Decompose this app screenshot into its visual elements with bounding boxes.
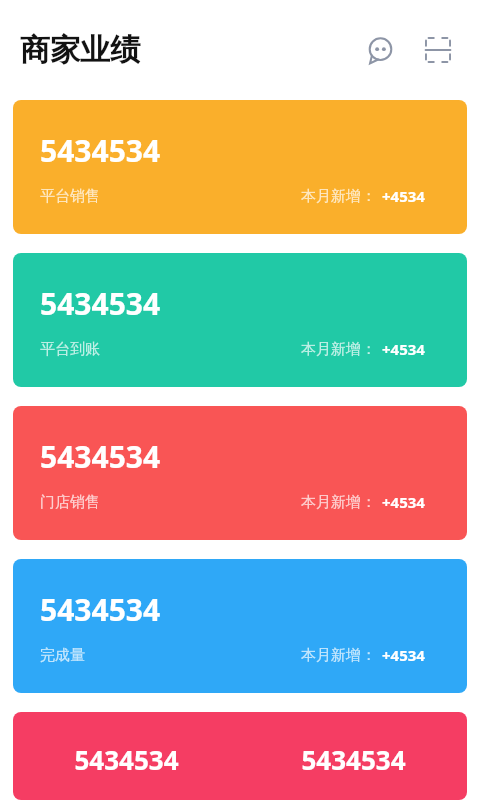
staticText: 完成量 [40, 646, 85, 665]
staticText: 5434534 [40, 436, 161, 477]
staticText: 5434534 [240, 742, 467, 777]
staticText: +4534 [382, 492, 425, 512]
button[interactable]: Scan [416, 28, 460, 72]
button[interactable]: 5434534 [13, 253, 467, 387]
button[interactable]: 5434534 [13, 406, 467, 540]
staticText: +4534 [382, 645, 425, 665]
staticText: 本月新增： [301, 493, 376, 512]
staticText: 本月新增： [301, 187, 376, 206]
staticText: 5434534 [40, 130, 161, 171]
staticText: 门店销售 [40, 493, 100, 512]
button[interactable]: Messages [358, 28, 402, 72]
staticText: +4534 [382, 339, 425, 359]
staticText: 5434534 [13, 742, 240, 777]
staticText: 平台到账 [40, 340, 100, 359]
staticText: 5434534 [40, 283, 161, 324]
button[interactable]: 5434534 [13, 712, 467, 800]
button[interactable]: 5434534 [13, 559, 467, 693]
staticText: 5434534 [40, 589, 161, 630]
staticText: 本月新增： [301, 340, 376, 359]
staticText: 本月新增： [301, 646, 376, 665]
staticText: 平台销售 [40, 187, 100, 206]
staticText: +4534 [382, 186, 425, 206]
button[interactable]: 5434534 [13, 100, 467, 234]
staticText: 商家业绩 [20, 31, 140, 69]
